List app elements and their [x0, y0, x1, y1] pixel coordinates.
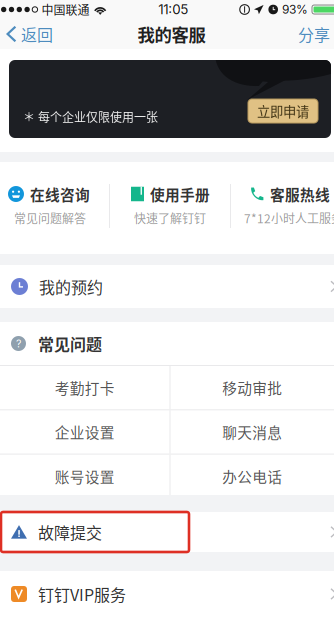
- staticText: 钉钉VIP服务: [38, 582, 126, 606]
- staticText: 聊天消息: [222, 421, 282, 442]
- staticText: ＊ 每个企业仅限使用一张: [23, 108, 158, 125]
- staticText: 企业设置: [55, 421, 115, 442]
- staticText: ?: [16, 337, 21, 350]
- button[interactable]: 在线咨询: [0, 162, 334, 254]
- staticText: 考勤打卡: [55, 377, 115, 398]
- staticText: 我的预约: [39, 275, 103, 298]
- button[interactable]: 考勤打卡: [0, 366, 169, 409]
- staticText: 在线咨询: [30, 183, 90, 205]
- button[interactable]: 我的预约: [0, 265, 334, 308]
- staticText: 立即申请: [257, 101, 309, 121]
- staticText: 中国联通: [42, 1, 90, 18]
- button[interactable]: 使用手册: [0, 162, 334, 254]
- button[interactable]: 账号设置: [0, 455, 169, 498]
- staticText: 93%: [282, 2, 308, 17]
- staticText: 快速了解钉钉: [134, 209, 206, 227]
- button[interactable]: 移动审批: [170, 366, 334, 409]
- staticText: 客服热线: [270, 183, 330, 205]
- staticText: 我的客服: [137, 21, 205, 47]
- staticText: 返回: [21, 22, 53, 46]
- button[interactable]: 聊天消息: [170, 410, 334, 454]
- staticText: 分享: [298, 22, 330, 46]
- staticText: 账号设置: [55, 466, 115, 487]
- button[interactable]: 返回: [0, 19, 80, 49]
- staticText: 7*12小时人工服务: [244, 209, 334, 227]
- staticText: 11:05: [158, 1, 188, 17]
- staticText: 故障提交: [38, 520, 102, 544]
- staticText: 移动审批: [222, 377, 282, 398]
- staticText: 常见问题: [38, 332, 102, 355]
- staticText: 办公电话: [222, 466, 282, 487]
- button[interactable]: 钉钉VIP服务: [0, 571, 334, 617]
- button[interactable]: 办公电话: [170, 455, 334, 498]
- button[interactable]: 企业设置: [0, 410, 169, 454]
- staticText: 使用手册: [150, 183, 210, 205]
- button[interactable]: ＊ 每个企业仅限使用一张: [9, 60, 331, 138]
- button[interactable]: 故障提交: [0, 512, 334, 552]
- button[interactable]: 分享: [298, 19, 334, 49]
- button[interactable]: 客服热线: [0, 162, 334, 254]
- staticText: 常见问题解答: [14, 209, 86, 227]
